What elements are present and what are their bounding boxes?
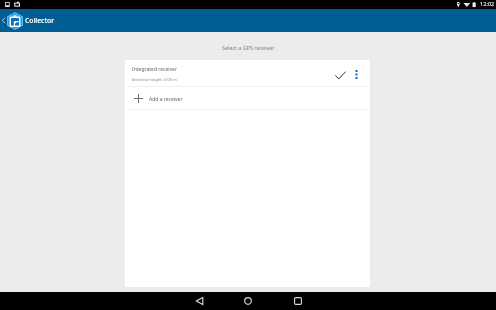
button[interactable]: Recents	[273, 292, 323, 310]
staticText: Add a receiver	[149, 96, 183, 103]
button[interactable]: Home	[223, 292, 273, 310]
button[interactable]: Back	[0, 9, 7, 32]
staticText: Integrated receiver	[132, 66, 177, 73]
staticText: Select a GPS receiver	[222, 44, 275, 51]
button[interactable]: Add a receiver	[125, 87, 370, 109]
staticText: Collector	[25, 16, 55, 25]
button[interactable]: More options	[346, 64, 366, 84]
staticText: Antenna height: 0.00 m	[132, 77, 177, 83]
button[interactable]: Back	[174, 292, 224, 310]
button[interactable]: Selected	[330, 65, 350, 85]
button[interactable]: Integrated receiver	[125, 60, 370, 86]
staticText: 12:02	[480, 0, 495, 8]
